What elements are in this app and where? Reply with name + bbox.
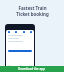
staticText: Ticket booking — [16, 11, 49, 17]
staticText: Download the app — [18, 67, 46, 71]
button[interactable] — [8, 50, 32, 52]
button[interactable]: Download the app — [0, 66, 64, 72]
staticText: Fastest Train — [18, 5, 47, 11]
